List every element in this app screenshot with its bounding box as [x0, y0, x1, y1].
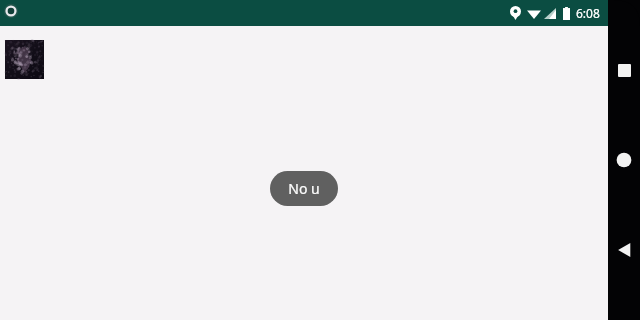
button[interactable]: Home	[608, 144, 640, 176]
button[interactable]: Image thumbnail	[5, 40, 44, 79]
staticText: 6:08	[576, 5, 600, 21]
button[interactable]: No u	[270, 171, 338, 206]
button[interactable]: Back	[608, 234, 640, 266]
button[interactable]: Recent apps	[608, 54, 640, 86]
staticText: No u	[288, 179, 320, 198]
